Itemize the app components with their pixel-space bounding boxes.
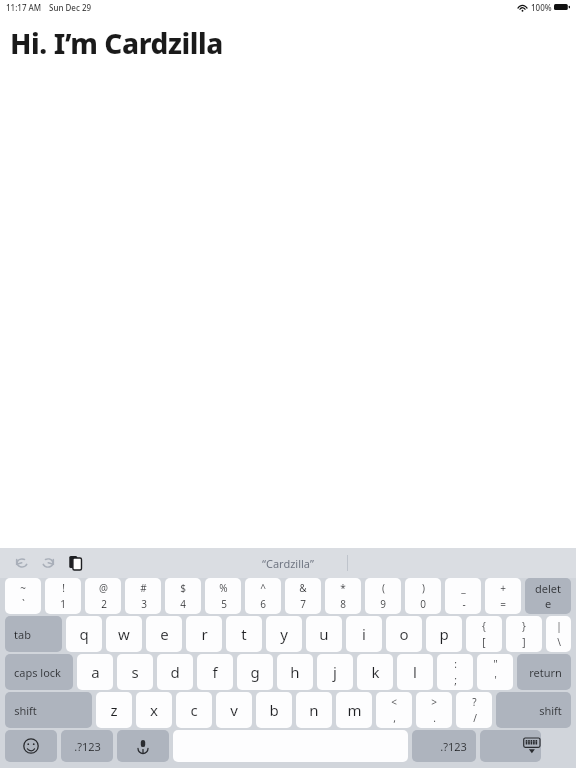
staticText: l (413, 662, 417, 682)
button[interactable]: { (466, 616, 502, 652)
staticText: 100% (531, 2, 552, 13)
staticText: : (454, 657, 457, 671)
button[interactable]: o (386, 616, 422, 652)
staticText: < (391, 695, 397, 709)
staticText: i (362, 624, 366, 644)
staticText: .?123 (74, 739, 101, 754)
button[interactable]: n (296, 692, 332, 728)
button[interactable]: Dictate (117, 730, 169, 762)
button[interactable]: Undo (10, 551, 34, 575)
button[interactable]: return (517, 654, 571, 690)
staticText: q (79, 624, 89, 644)
button[interactable]: : (437, 654, 473, 690)
button[interactable]: k (357, 654, 393, 690)
button[interactable]: ? (456, 692, 492, 728)
button[interactable]: @ (85, 578, 121, 614)
staticText: .?123 (440, 739, 467, 754)
button[interactable]: % (205, 578, 241, 614)
staticText: [ (482, 635, 486, 649)
button[interactable]: | (546, 616, 571, 652)
button[interactable]: > (416, 692, 452, 728)
button[interactable]: e (146, 616, 182, 652)
staticText: " (493, 657, 498, 671)
staticText: w (118, 624, 130, 644)
button[interactable]: # (125, 578, 161, 614)
button[interactable]: h (277, 654, 313, 690)
button[interactable]: g (237, 654, 273, 690)
button[interactable]: ~ (5, 578, 41, 614)
staticText: s (131, 662, 139, 682)
staticText: p (439, 624, 449, 644)
button[interactable]: s (117, 654, 153, 690)
staticText: - (462, 597, 466, 611)
button[interactable]: a (77, 654, 113, 690)
button[interactable]: Redo (36, 551, 60, 575)
button[interactable]: t (226, 616, 262, 652)
staticText: u (319, 624, 329, 644)
button[interactable]: l (397, 654, 433, 690)
staticText: ] (522, 635, 526, 649)
button[interactable]: f (197, 654, 233, 690)
staticText: . (433, 711, 436, 725)
button[interactable]: _ (445, 578, 481, 614)
button[interactable]: q (66, 616, 102, 652)
button[interactable]: " (477, 654, 513, 690)
button[interactable]: j (317, 654, 353, 690)
button[interactable]: & (285, 578, 321, 614)
button[interactable]: tab (5, 616, 62, 652)
staticText: b (269, 700, 279, 720)
button[interactable]: Paste (64, 551, 86, 575)
button[interactable]: b (256, 692, 292, 728)
button[interactable]: p (426, 616, 462, 652)
button[interactable]: ) (405, 578, 441, 614)
button[interactable]: y (266, 616, 302, 652)
staticText: 1 (60, 597, 66, 611)
button[interactable]: z (96, 692, 132, 728)
button[interactable]: v (216, 692, 252, 728)
staticText: ` (22, 597, 25, 611)
button[interactable]: } (506, 616, 542, 652)
button[interactable]: caps lock (5, 654, 73, 690)
button[interactable]: ^ (245, 578, 281, 614)
button[interactable]: i (346, 616, 382, 652)
button[interactable]: x (136, 692, 172, 728)
button[interactable]: c (176, 692, 212, 728)
button[interactable]: “Cardzilla” (262, 556, 314, 571)
staticText: Sun Dec 29 (49, 2, 92, 13)
staticText: % (219, 581, 228, 595)
button[interactable]: w (106, 616, 142, 652)
staticText: | (556, 619, 562, 633)
button[interactable]: u (306, 616, 342, 652)
button[interactable]: .?123 (412, 730, 476, 762)
staticText: shift (539, 703, 562, 718)
button[interactable]: * (325, 578, 361, 614)
button[interactable]: $ (165, 578, 201, 614)
button[interactable]: shift (496, 692, 571, 728)
button[interactable]: < (376, 692, 412, 728)
staticText: “Cardzilla” (262, 556, 314, 571)
button[interactable]: + (485, 578, 521, 614)
button[interactable]: ! (45, 578, 81, 614)
button[interactable]: d (157, 654, 193, 690)
staticText: ; (454, 673, 457, 687)
staticText: h (290, 662, 300, 682)
button[interactable]: Hide keyboard (480, 730, 541, 762)
staticText: Hi. I’m Cardzilla (10, 24, 223, 62)
staticText: / (473, 711, 477, 725)
staticText: k (371, 662, 380, 682)
button[interactable]: m (336, 692, 372, 728)
staticText: delete (534, 581, 562, 611)
staticText: ' (494, 673, 497, 687)
staticText: * (340, 581, 346, 595)
button[interactable]: r (186, 616, 222, 652)
button[interactable]: delete (525, 578, 571, 614)
button[interactable]: ( (365, 578, 401, 614)
staticText: 5 (221, 597, 227, 611)
button[interactable]: Emoji (5, 730, 57, 762)
staticText: } (522, 619, 526, 633)
staticText: > (431, 695, 437, 709)
button[interactable]: .?123 (61, 730, 113, 762)
staticText: caps lock (14, 665, 61, 680)
button[interactable]: shift (5, 692, 92, 728)
